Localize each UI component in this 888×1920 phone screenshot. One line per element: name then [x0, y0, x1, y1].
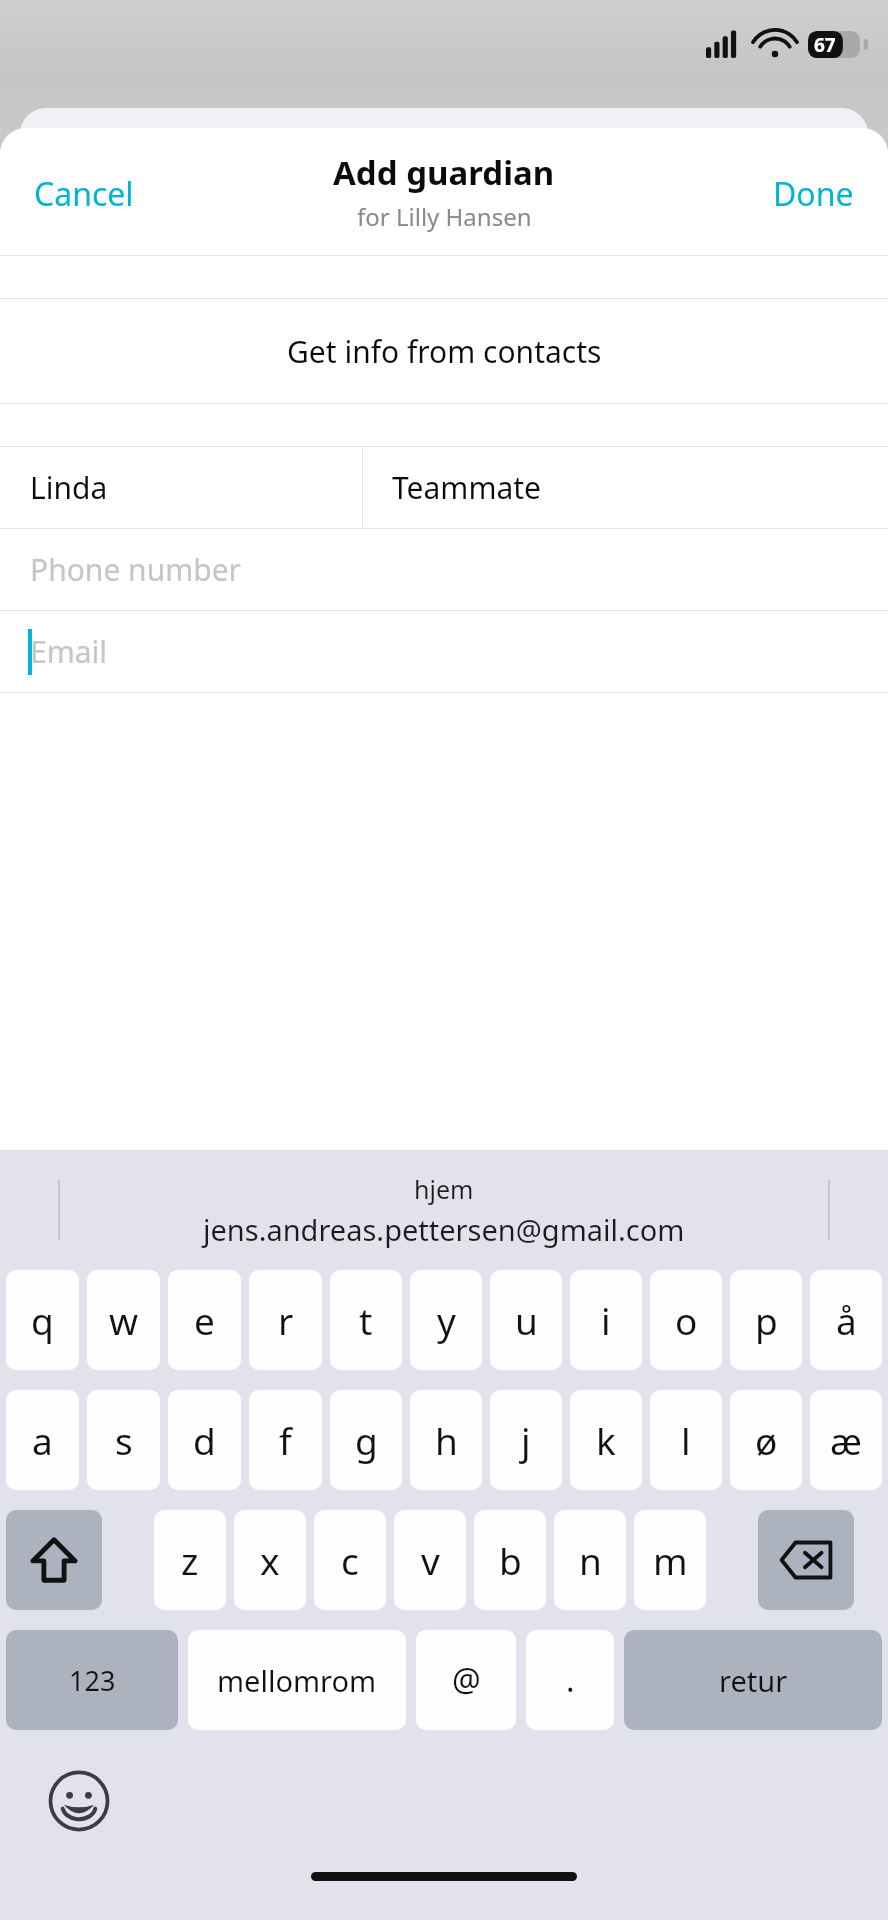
button[interactable]: f	[249, 1390, 322, 1490]
button[interactable]: r	[249, 1270, 322, 1370]
button[interactable]: v	[394, 1510, 466, 1610]
staticText: f	[279, 1415, 292, 1465]
button[interactable]: w	[87, 1270, 160, 1370]
staticText: p	[755, 1295, 778, 1345]
button[interactable]: u	[490, 1270, 562, 1370]
button[interactable]: ø	[730, 1390, 802, 1490]
button[interactable]: j	[490, 1390, 562, 1490]
staticText: c	[341, 1535, 359, 1585]
button[interactable]: Teammate	[362, 447, 888, 528]
staticText: Linda	[30, 467, 108, 508]
staticText: o	[675, 1295, 698, 1345]
button[interactable]: å	[810, 1270, 882, 1370]
staticText: i	[601, 1295, 611, 1345]
button[interactable]: a	[6, 1390, 79, 1490]
staticText: s	[115, 1415, 133, 1465]
staticText: for Lilly Hansen	[357, 200, 532, 233]
staticText: æ	[830, 1415, 862, 1465]
button[interactable]: k	[570, 1390, 642, 1490]
button[interactable]: o	[650, 1270, 722, 1370]
staticText: a	[32, 1415, 53, 1465]
button[interactable]: m	[634, 1510, 706, 1610]
staticText: 123	[69, 1662, 116, 1699]
staticText: .	[566, 1658, 575, 1702]
button[interactable]: g	[330, 1390, 402, 1490]
staticText: Phone number	[30, 549, 241, 590]
staticText: 67	[814, 32, 836, 58]
staticText: n	[579, 1535, 602, 1585]
button[interactable]: p	[730, 1270, 802, 1370]
staticText: x	[260, 1535, 280, 1585]
button[interactable]: z	[154, 1510, 226, 1610]
button[interactable]: h	[410, 1390, 482, 1490]
staticText: u	[515, 1295, 538, 1345]
staticText: d	[193, 1415, 216, 1465]
button[interactable]: 123	[6, 1630, 178, 1730]
staticText: g	[355, 1415, 378, 1465]
button[interactable]: Emoji keyboard	[46, 1768, 112, 1834]
staticText: k	[596, 1415, 616, 1465]
button[interactable]: x	[234, 1510, 306, 1610]
button[interactable]: i	[570, 1270, 642, 1370]
button[interactable]: Cancel	[0, 158, 154, 230]
staticText: b	[499, 1535, 522, 1585]
staticText: v	[421, 1535, 440, 1585]
button[interactable]: q	[6, 1270, 79, 1370]
staticText: Done	[773, 172, 854, 216]
staticText: Email	[30, 631, 108, 672]
button[interactable]: t	[330, 1270, 402, 1370]
button[interactable]: .	[526, 1630, 614, 1730]
button[interactable]: Get info from contacts	[0, 299, 888, 403]
staticText: Cancel	[34, 172, 134, 216]
button[interactable]: d	[168, 1390, 241, 1490]
staticText: l	[681, 1415, 691, 1465]
staticText: m	[653, 1535, 688, 1585]
staticText: z	[181, 1535, 199, 1585]
staticText: r	[278, 1295, 294, 1345]
button[interactable]: n	[554, 1510, 626, 1610]
button[interactable]: Phone number	[0, 529, 888, 610]
button[interactable]: mellomrom	[188, 1630, 406, 1730]
button[interactable]: e	[168, 1270, 241, 1370]
button[interactable]: Backspace	[758, 1510, 854, 1610]
button[interactable]: Linda	[0, 447, 362, 528]
staticText: Add guardian	[333, 150, 555, 195]
staticText: y	[437, 1295, 456, 1345]
button[interactable]: retur	[624, 1630, 882, 1730]
button[interactable]: b	[474, 1510, 546, 1610]
button[interactable]: Shift	[6, 1510, 102, 1610]
button[interactable]: æ	[810, 1390, 882, 1490]
staticText: w	[109, 1295, 139, 1345]
button[interactable]: y	[410, 1270, 482, 1370]
button[interactable]: @	[416, 1630, 516, 1730]
button[interactable]: s	[87, 1390, 160, 1490]
button[interactable]: c	[314, 1510, 386, 1610]
staticText: Get info from contacts	[287, 331, 602, 372]
staticText: ø	[755, 1415, 778, 1465]
staticText: j	[521, 1415, 531, 1465]
button[interactable]: Email	[0, 611, 888, 692]
staticText: hjem	[414, 1172, 474, 1206]
staticText: @	[452, 1658, 481, 1702]
staticText: q	[31, 1295, 54, 1345]
staticText: t	[359, 1295, 373, 1345]
staticText: e	[194, 1295, 215, 1345]
staticText: å	[836, 1295, 857, 1345]
staticText: mellomrom	[217, 1661, 377, 1700]
button[interactable]: Done	[753, 158, 888, 230]
staticText: Teammate	[392, 467, 542, 508]
staticText: jens.andreas.pettersen@gmail.com	[203, 1210, 685, 1249]
staticText: h	[435, 1415, 458, 1465]
staticText: retur	[719, 1661, 788, 1700]
button[interactable]: l	[650, 1390, 722, 1490]
